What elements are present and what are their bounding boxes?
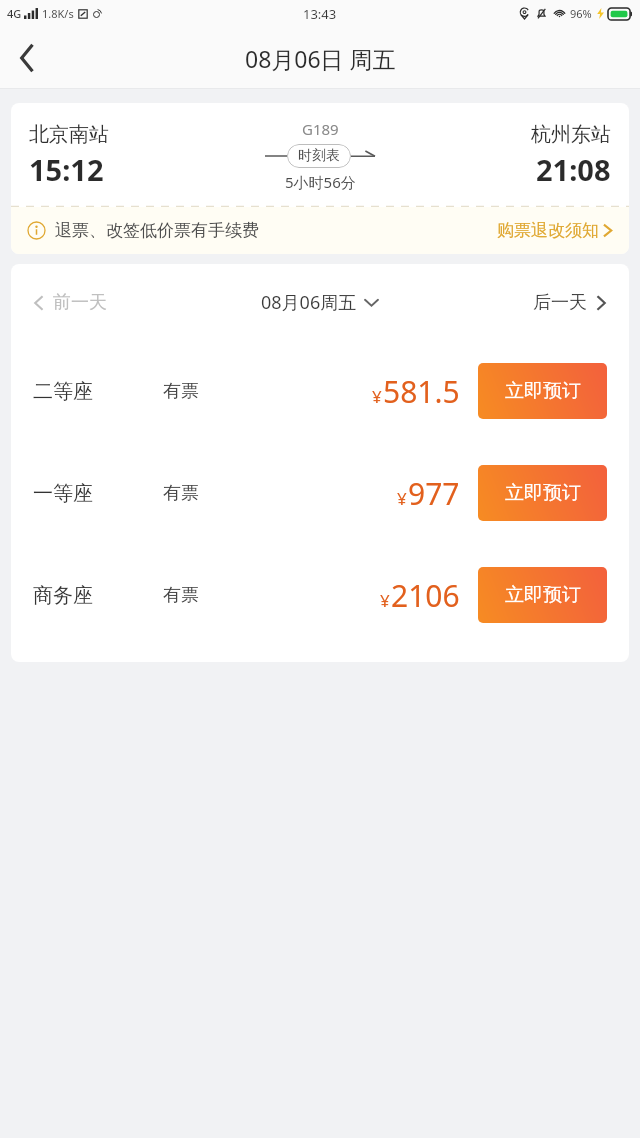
button[interactable]: 退票、改签低价票有手续费 — [11, 207, 629, 254]
staticText: 时刻表 — [298, 147, 340, 165]
staticText: 96% — [570, 6, 592, 21]
staticText: 08月06日 周五 — [245, 43, 396, 74]
staticText: 一等座 — [33, 481, 163, 506]
button[interactable]: 立即预订 — [478, 567, 607, 623]
staticText: 977 — [408, 473, 460, 514]
staticText: ¥ — [380, 589, 390, 612]
staticText: 二等座 — [33, 379, 163, 404]
button[interactable]: 后一天 — [531, 283, 609, 322]
staticText: 5小时56分 — [285, 172, 356, 192]
staticText: 北京南站 — [29, 122, 109, 147]
staticText: 08月06周五 — [261, 290, 357, 315]
staticText: 前一天 — [53, 291, 107, 314]
staticText: 立即预订 — [505, 379, 581, 403]
staticText: ¥ — [372, 385, 382, 408]
staticText: 购票退改须知 — [497, 220, 599, 241]
staticText: 4G — [7, 6, 22, 21]
button[interactable]: 立即预订 — [478, 363, 607, 419]
staticText: 商务座 — [33, 583, 163, 608]
staticText: 有票 — [163, 380, 258, 403]
button[interactable]: Back — [0, 31, 54, 85]
staticText: 13:43 — [303, 5, 337, 23]
staticText: 有票 — [163, 584, 258, 607]
staticText: 21:08 — [536, 150, 611, 189]
staticText: 退票、改签低价票有手续费 — [55, 220, 259, 241]
staticText: 有票 — [163, 482, 258, 505]
staticText: 立即预订 — [505, 583, 581, 607]
button[interactable]: 前一天 — [31, 283, 109, 322]
staticText: 2106 — [391, 575, 460, 616]
staticText: 1.8K/s — [42, 6, 74, 21]
staticText: G189 — [302, 119, 339, 139]
staticText: 杭州东站 — [531, 122, 611, 147]
button[interactable]: 立即预订 — [478, 465, 607, 521]
button[interactable]: 08月06周五 — [257, 282, 382, 323]
staticText: 581.5 — [383, 371, 460, 412]
staticText: ¥ — [397, 487, 407, 510]
button[interactable]: 时刻表 — [287, 144, 351, 168]
staticText: 后一天 — [533, 291, 587, 314]
staticText: 15:12 — [29, 150, 104, 189]
staticText: 立即预订 — [505, 481, 581, 505]
